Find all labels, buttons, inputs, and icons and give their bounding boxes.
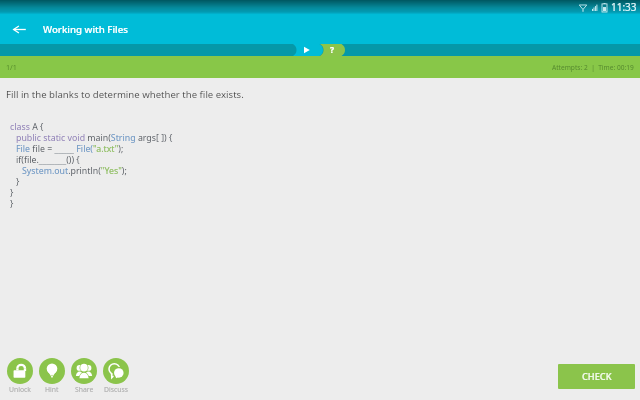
staticText: 11:33 (611, 0, 637, 14)
staticText: CHECK (582, 370, 612, 383)
staticText: public static void main(String args[ ]) … (16, 132, 173, 143)
staticText: class A { (10, 121, 44, 132)
button[interactable]: Hint (39, 358, 65, 394)
button[interactable]: Back (12, 22, 27, 37)
button[interactable]: Share (71, 358, 97, 394)
staticText: Discuss (104, 385, 128, 394)
staticText: } (10, 198, 14, 209)
staticText: 1/1 (6, 62, 17, 72)
staticText: if(file._______()) { (16, 154, 80, 165)
staticText: } (10, 187, 14, 198)
staticText: Hint (45, 385, 59, 394)
staticText: Attempts: 2 | Time: 00:19 (552, 63, 634, 72)
staticText: Working with Files (43, 23, 128, 36)
staticText: File file = _____ File("a.txt"); (16, 143, 124, 154)
staticText: Share (75, 385, 94, 394)
button[interactable]: Discuss (103, 358, 129, 394)
button[interactable]: CHECK (558, 364, 635, 389)
staticText: } (16, 176, 20, 187)
staticText: ? (330, 44, 335, 56)
staticText: System.out.println("Yes"); (22, 165, 127, 176)
button[interactable]: Unlock (7, 358, 33, 394)
staticText: Unlock (9, 385, 31, 394)
staticText: Fill in the blanks to determine whether … (6, 88, 244, 101)
